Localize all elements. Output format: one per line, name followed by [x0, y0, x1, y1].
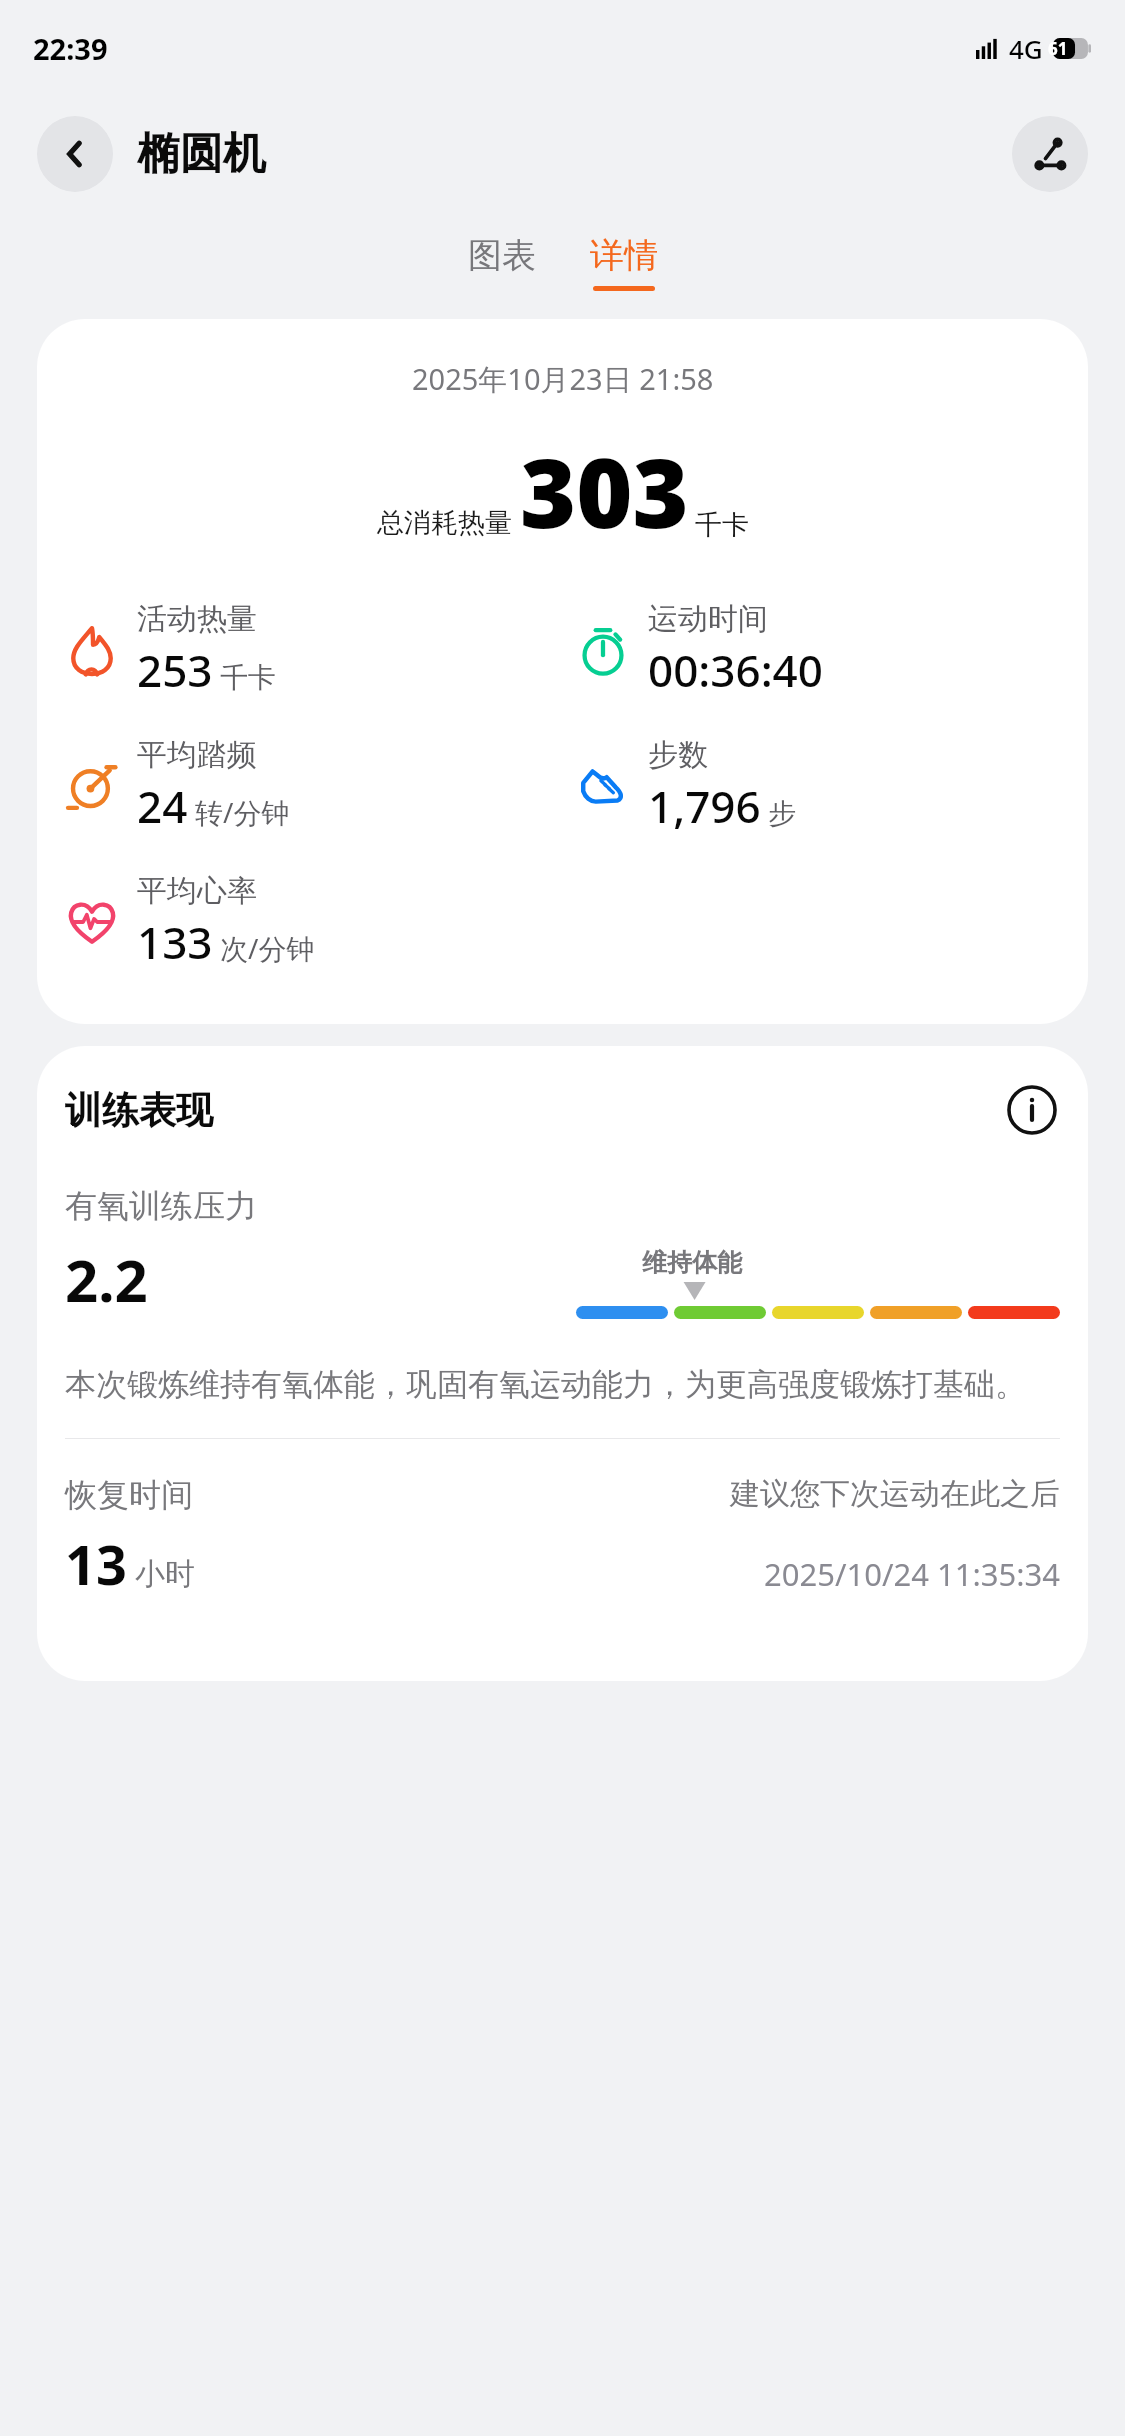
staticText: 2025年10月23日 21:58 — [412, 359, 714, 399]
button[interactable]: 平均心率 — [61, 872, 315, 972]
staticText: 千卡 — [220, 660, 276, 695]
staticText: 千卡 — [695, 508, 749, 542]
staticText: 133 — [137, 912, 213, 972]
staticText: 运动时间 — [648, 600, 768, 638]
staticText: 维持体能 — [642, 1247, 742, 1278]
staticText: 2025/10/24 11:35:34 — [764, 1553, 1060, 1595]
staticText: 次/分钟 — [220, 929, 315, 967]
staticText: 本次锻炼维持有氧体能，巩固有氧运动能力，为更高强度锻炼打基础。 — [65, 1365, 1026, 1404]
button[interactable]: 运动时间 — [572, 600, 823, 700]
staticText: 总消耗热量 — [377, 506, 512, 540]
button[interactable]: Info — [1004, 1082, 1060, 1138]
staticText: 00:36:40 — [648, 640, 823, 700]
staticText: 22:39 — [33, 29, 108, 68]
staticText: 平均心率 — [137, 872, 257, 910]
staticText: 平均踏频 — [137, 736, 257, 774]
button[interactable]: 平均踏频 — [61, 736, 290, 836]
button[interactable]: 步数 — [572, 736, 796, 836]
staticText: 活动热量 — [137, 600, 257, 638]
staticText: 图表 — [468, 234, 536, 277]
staticText: 恢复时间 — [65, 1475, 193, 1515]
staticText: 61 — [1048, 37, 1068, 60]
button[interactable]: Share — [1012, 116, 1088, 192]
button[interactable]: Back — [37, 116, 113, 192]
staticText: 13 — [65, 1527, 127, 1601]
staticText: 24 — [137, 776, 188, 836]
staticText: 小时 — [135, 1555, 195, 1593]
staticText: 椭圆机 — [137, 127, 266, 181]
staticText: 步 — [768, 796, 796, 831]
staticText: 步数 — [648, 736, 708, 774]
button[interactable]: 图表 — [450, 228, 554, 283]
staticText: 转/分钟 — [195, 793, 290, 831]
button[interactable]: 活动热量 — [61, 600, 276, 700]
staticText: 有氧训练压力 — [65, 1186, 257, 1226]
staticText: 253 — [137, 640, 213, 700]
staticText: 详情 — [590, 234, 658, 277]
staticText: 建议您下次运动在此之后 — [730, 1475, 1060, 1513]
staticText: 2.2 — [65, 1240, 148, 1319]
staticText: 1,796 — [648, 776, 761, 836]
staticText: 训练表现 — [65, 1087, 213, 1134]
staticText: 4G — [1009, 31, 1043, 66]
staticText: 303 — [520, 425, 689, 556]
button[interactable]: 详情 — [572, 228, 676, 297]
